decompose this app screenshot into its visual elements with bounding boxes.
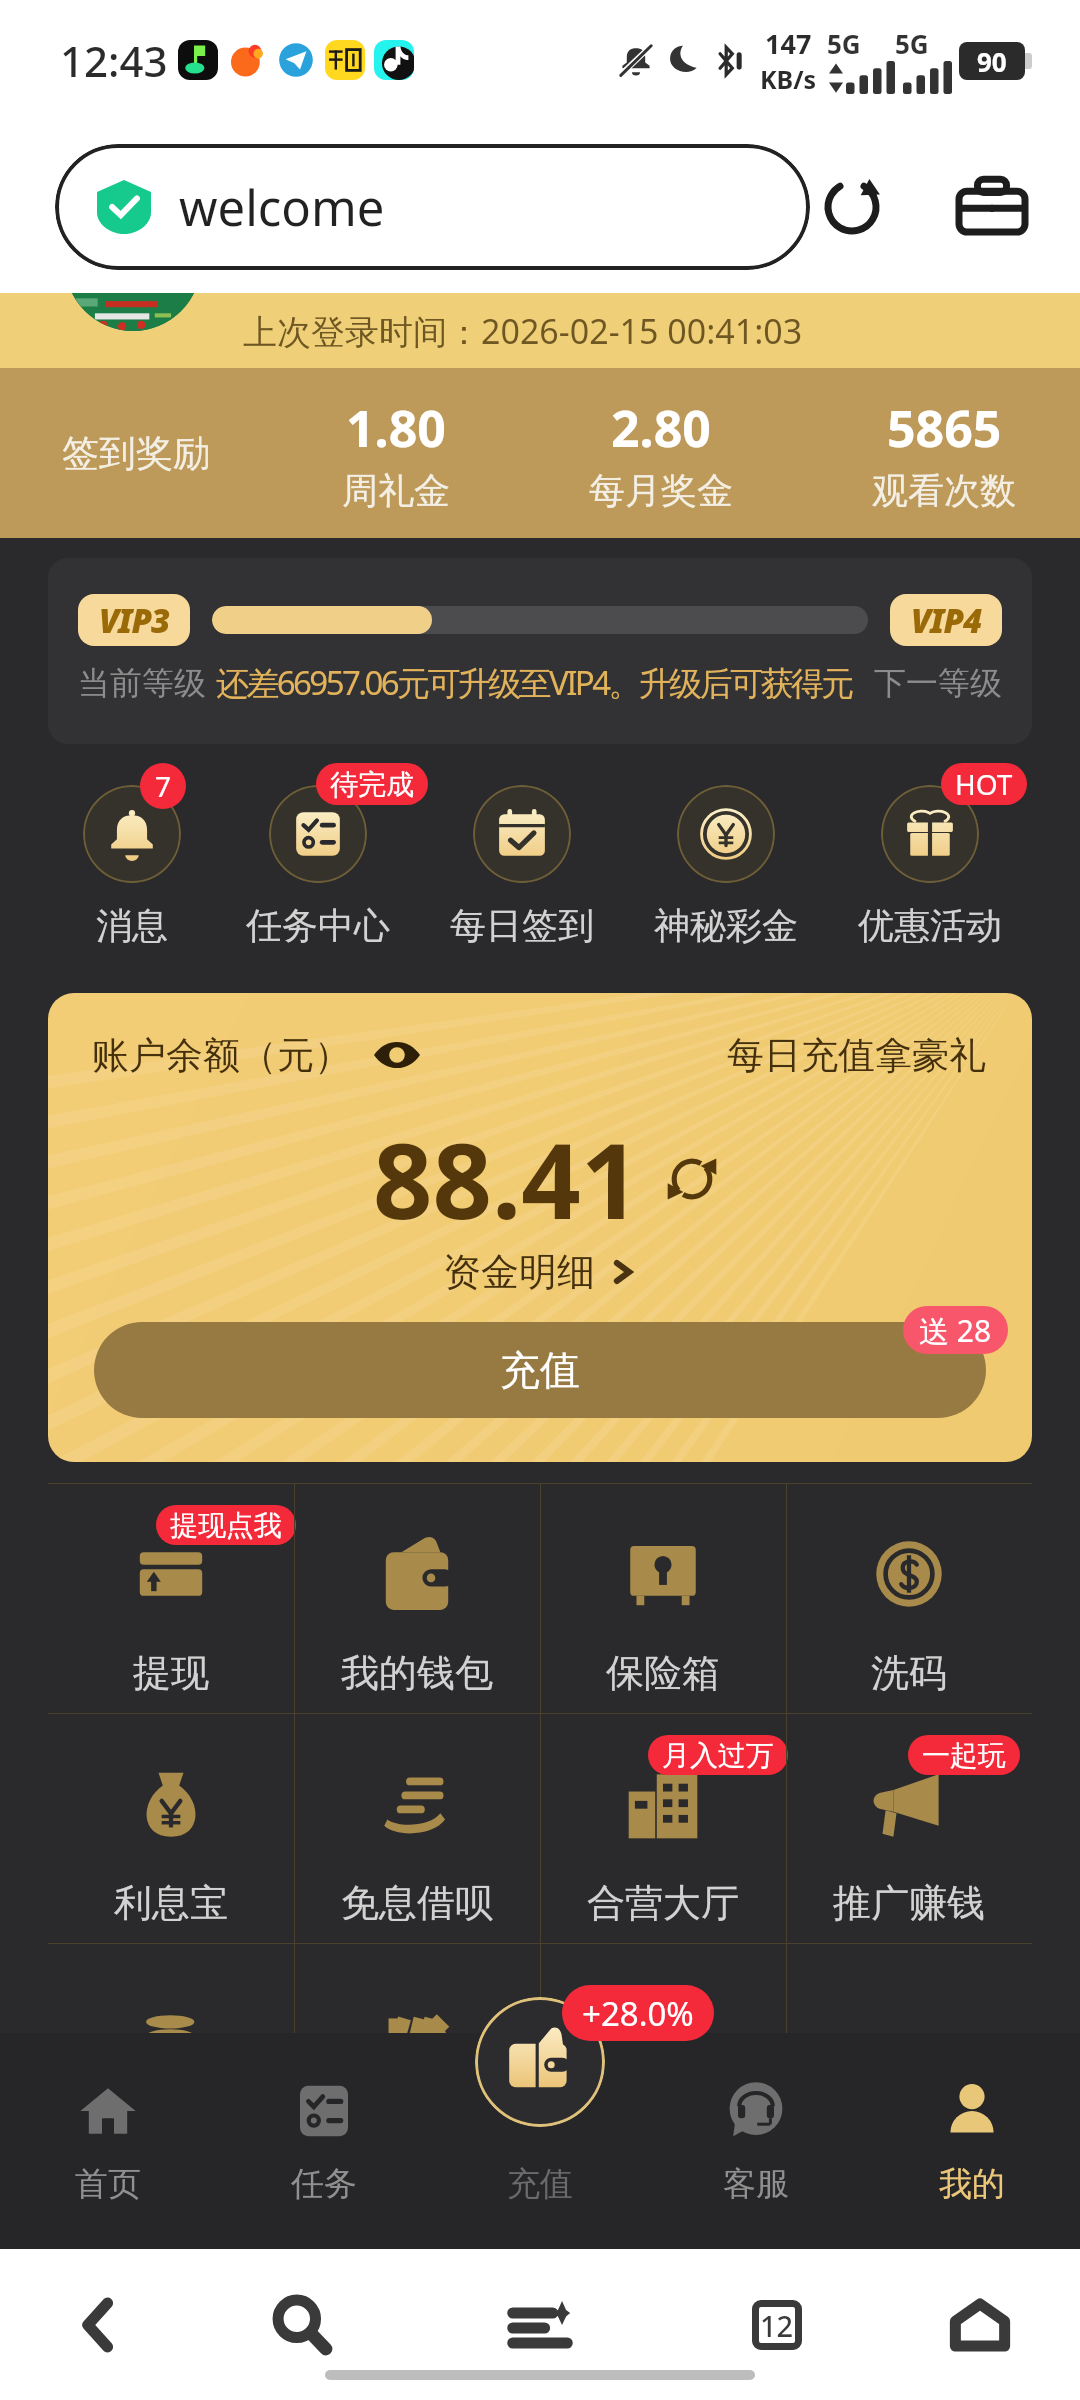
staticText: 周礼金 [342, 468, 450, 513]
staticText: 消息 [96, 903, 168, 948]
staticText: 下一等级 [874, 663, 1002, 703]
button[interactable]: 提现 [48, 1483, 294, 1713]
button[interactable]: Home [930, 2275, 1030, 2375]
staticText: 提现点我 [170, 1508, 282, 1543]
button[interactable]: 洗码 [786, 1483, 1032, 1713]
staticText: 一起玩 [922, 1738, 1006, 1773]
staticText: 我的钱包 [341, 1649, 493, 1697]
button[interactable]: 任务中心 [218, 770, 418, 948]
button[interactable]: Menu [490, 2275, 590, 2375]
staticText: 88.41 [373, 1108, 641, 1250]
button[interactable]: 合营大厅 [540, 1713, 786, 1943]
staticText: 客服 [723, 2163, 789, 2205]
staticText: 1.80 [346, 394, 446, 462]
button[interactable] [786, 1943, 1032, 2033]
staticText: 资金明细 [443, 1248, 595, 1296]
staticText: HOT [955, 765, 1013, 803]
staticText: 签到奖励 [62, 430, 210, 477]
button[interactable]: Back [48, 2275, 148, 2375]
staticText: 上次登录时间：2026-02-15 00:41:03 [243, 308, 803, 354]
staticText: welcome [179, 174, 385, 241]
staticText: 免息借呗 [341, 1879, 493, 1927]
staticText: 每日签到 [450, 903, 594, 948]
staticText: 首页 [75, 2163, 141, 2205]
staticText: 12:43 [60, 32, 168, 89]
button[interactable]: 优惠活动 [830, 770, 1030, 948]
staticText: +28.0% [582, 1991, 694, 2036]
staticText: 当前等级 [78, 663, 206, 703]
button[interactable]: 每日签到 [422, 770, 622, 948]
staticText: 2.80 [611, 394, 711, 462]
staticText: 5G [895, 26, 929, 61]
staticText: 观看次数 [872, 468, 1016, 513]
button[interactable]: Recharge [475, 1997, 605, 2127]
button[interactable]: 首页 [0, 2033, 216, 2249]
staticText: 12 [760, 2306, 794, 2345]
staticText: 每月奖金 [589, 468, 733, 513]
button[interactable]: Tools [944, 159, 1040, 255]
staticText: 神秘彩金 [654, 903, 798, 948]
staticText: VIP4 [911, 598, 982, 643]
staticText: 账户余额（元） [92, 1032, 351, 1079]
button[interactable] [540, 1943, 786, 2033]
button[interactable]: 免息借呗 [294, 1713, 540, 1943]
button[interactable]: Reload [804, 159, 900, 255]
button[interactable]: 神秘彩金 [626, 770, 826, 948]
staticText: KB/s [760, 62, 817, 96]
staticText: 5G [827, 26, 861, 61]
button[interactable]: Toggle balance [373, 1031, 421, 1079]
staticText: 推广赚钱 [833, 1879, 985, 1927]
staticText: 147 [765, 25, 812, 62]
button[interactable]: Refresh balance [665, 1152, 719, 1206]
button[interactable]: 资金明细 [443, 1248, 637, 1296]
staticText: 任务中心 [246, 903, 390, 948]
staticText: 优惠活动 [858, 903, 1002, 948]
staticText: 还差66957.06元可升级至VIP4。升级后可获得元 [216, 660, 852, 705]
staticText: 充值 [507, 2163, 573, 2205]
staticText: VIP3 [99, 598, 170, 643]
staticText: 月入过万 [662, 1738, 774, 1773]
button[interactable]: Tabs [727, 2275, 827, 2375]
button[interactable]: 充值 [94, 1322, 986, 1418]
staticText: 洗码 [871, 1649, 947, 1697]
staticText: 送 28 [919, 1310, 992, 1351]
staticText: 5865 [887, 394, 1002, 462]
button[interactable]: 推广赚钱 [786, 1713, 1032, 1943]
button[interactable]: 客服 [648, 2033, 864, 2249]
staticText: 合营大厅 [587, 1879, 739, 1927]
button[interactable]: Search [252, 2275, 352, 2375]
staticText: 任务 [291, 2163, 357, 2205]
button[interactable]: 利息宝 [48, 1713, 294, 1943]
button[interactable] [48, 1943, 294, 2033]
button[interactable]: VIP3 [48, 558, 1032, 744]
button[interactable]: 我的钱包 [294, 1483, 540, 1713]
staticText: 90 [977, 44, 1007, 79]
staticText: 充值 [500, 1345, 580, 1395]
staticText: 提现 [133, 1649, 209, 1697]
button[interactable]: 我的 [864, 2033, 1080, 2249]
button[interactable]: 消息 [32, 770, 232, 948]
staticText: 保险箱 [606, 1649, 720, 1697]
button[interactable]: 任务 [216, 2033, 432, 2249]
staticText: 每日充值拿豪礼 [727, 1032, 986, 1079]
button[interactable] [294, 1943, 540, 2033]
staticText: 我的 [939, 2163, 1005, 2205]
staticText: 待完成 [330, 767, 414, 802]
staticText: 7 [155, 767, 172, 805]
button[interactable]: 保险箱 [540, 1483, 786, 1713]
button[interactable]: welcome [55, 144, 810, 270]
staticText: 利息宝 [114, 1879, 228, 1927]
